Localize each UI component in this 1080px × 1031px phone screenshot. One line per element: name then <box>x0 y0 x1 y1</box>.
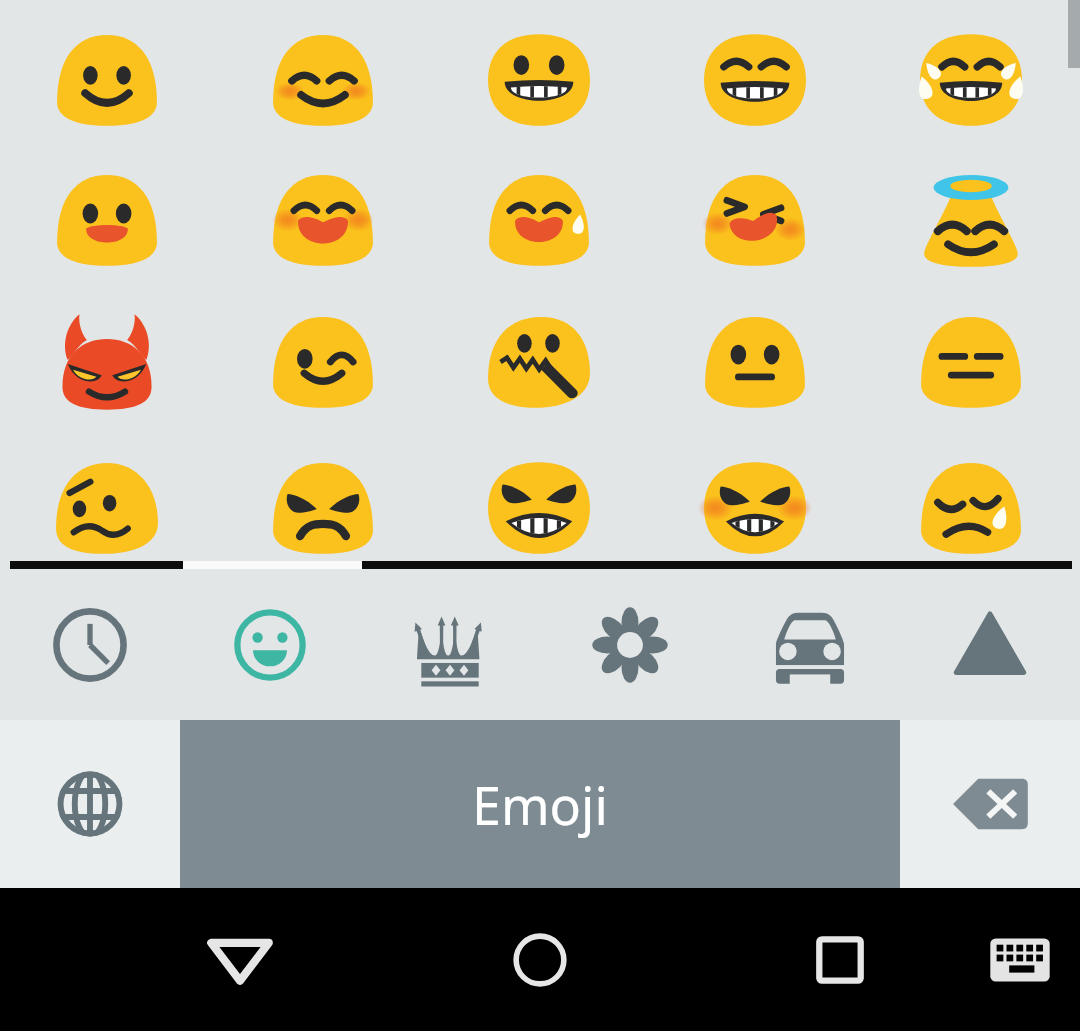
button[interactable]: Home <box>480 888 600 1031</box>
button[interactable]: Grinning face with smiling eyes <box>216 142 432 284</box>
button[interactable]: Grinning face <box>432 0 648 142</box>
button[interactable]: Zipper-mouth face <box>432 284 648 426</box>
button[interactable]: Angry face <box>216 426 432 568</box>
staticText: Emoji <box>472 769 608 840</box>
button[interactable]: Smileys <box>180 570 360 720</box>
button[interactable]: Squinting face with tongue <box>648 142 864 284</box>
button[interactable]: Smiling face with smiling eyes <box>216 0 432 142</box>
button[interactable]: Confused face <box>0 426 216 568</box>
button[interactable]: Slightly smiling face <box>0 0 216 142</box>
button[interactable]: Backspace <box>900 720 1080 888</box>
button[interactable]: Travel <box>720 570 900 720</box>
button[interactable]: Face with open mouth <box>0 142 216 284</box>
button[interactable]: Symbols <box>900 570 1080 720</box>
button[interactable]: Face with tears of joy <box>864 0 1080 142</box>
button[interactable]: Smiling face with halo <box>864 142 1080 284</box>
button[interactable]: Sad but relieved face <box>864 426 1080 568</box>
button[interactable]: Recents <box>780 888 900 1031</box>
button[interactable]: Beaming face with smiling eyes <box>648 0 864 142</box>
button[interactable]: Recent <box>0 570 180 720</box>
button[interactable]: Change language <box>0 720 180 888</box>
button[interactable]: Expressionless face <box>864 284 1080 426</box>
button[interactable]: Hide keyboard <box>180 888 300 1031</box>
button[interactable]: Emoji <box>180 720 900 888</box>
button[interactable]: Switch keyboard <box>960 888 1080 1031</box>
button[interactable]: Grinning face with sweat <box>432 142 648 284</box>
button[interactable]: Smiling face with horns <box>0 284 216 426</box>
button[interactable]: Winking face <box>216 284 432 426</box>
button[interactable]: People <box>360 570 540 720</box>
button[interactable]: Face with symbols on mouth <box>432 426 648 568</box>
button[interactable]: Pouting face <box>648 426 864 568</box>
button[interactable]: Nature <box>540 570 720 720</box>
button[interactable]: Neutral face <box>648 284 864 426</box>
